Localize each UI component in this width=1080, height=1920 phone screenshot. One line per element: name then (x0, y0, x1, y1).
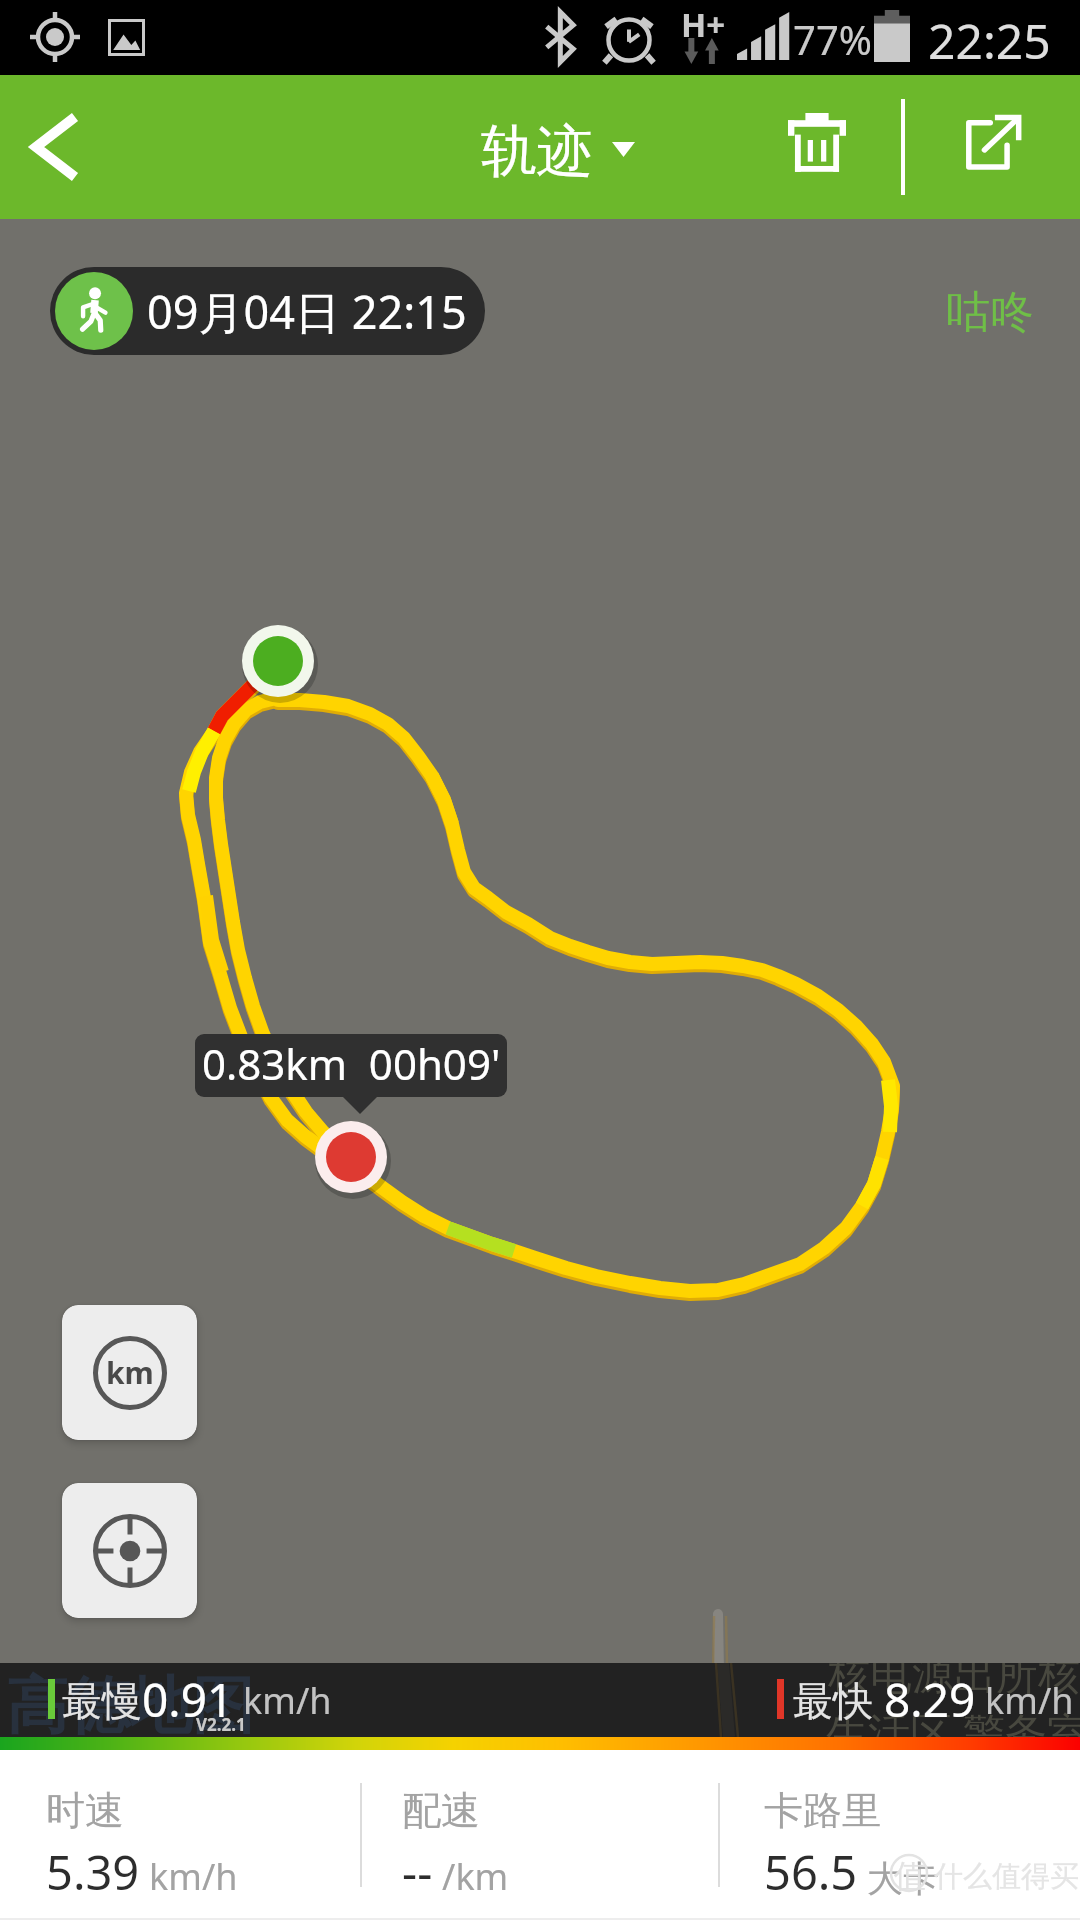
staticText: 最快 (793, 1676, 873, 1726)
staticText: km (106, 1352, 154, 1393)
staticText: 值 (894, 1856, 926, 1896)
staticText: 8.29 (884, 1668, 976, 1731)
staticText: 什么值得买 (934, 1858, 1079, 1895)
staticText: -- (402, 1840, 433, 1904)
button[interactable]: Re-centre map (62, 1483, 197, 1618)
staticText: 咕咚 (946, 285, 1034, 340)
staticText: km/h (149, 1852, 238, 1901)
staticText: km/h (243, 1676, 332, 1725)
staticText: 09月04日 22:15 (147, 281, 467, 342)
button[interactable]: 09月04日 22:15 (50, 267, 485, 355)
staticText: 56.5 (764, 1840, 858, 1904)
button[interactable]: Back (0, 75, 108, 219)
staticText: 0.83km 00h09' (202, 1035, 501, 1092)
staticText: 配速 (402, 1786, 480, 1835)
staticText: 卡路里 (764, 1786, 881, 1835)
staticText: 最慢 (62, 1676, 142, 1726)
staticText: /km (442, 1852, 509, 1901)
staticText: 轨迹 (481, 116, 593, 187)
staticText: 0.91 (142, 1668, 234, 1731)
staticText: H+ (681, 2, 726, 47)
button[interactable]: Delete (746, 75, 886, 219)
staticText: km/h (985, 1676, 1074, 1725)
staticText: V2.2.1 (196, 1713, 246, 1736)
staticText: 时速 (46, 1786, 124, 1835)
button[interactable]: 轨迹 (470, 75, 650, 219)
button[interactable]: Toggle kilometre markers (62, 1305, 197, 1440)
staticText: 生活区 警务室 (826, 1703, 1080, 1737)
staticText: 核电源出所核电 (828, 1663, 1080, 1702)
staticText: 22:25 (928, 8, 1051, 73)
staticText: 77% (793, 12, 872, 66)
staticText: 高德地图 (6, 1667, 254, 1737)
staticText: 5.39 (46, 1840, 140, 1904)
staticText: 大卡 (867, 1856, 939, 1901)
button[interactable]: Share (925, 75, 1075, 219)
